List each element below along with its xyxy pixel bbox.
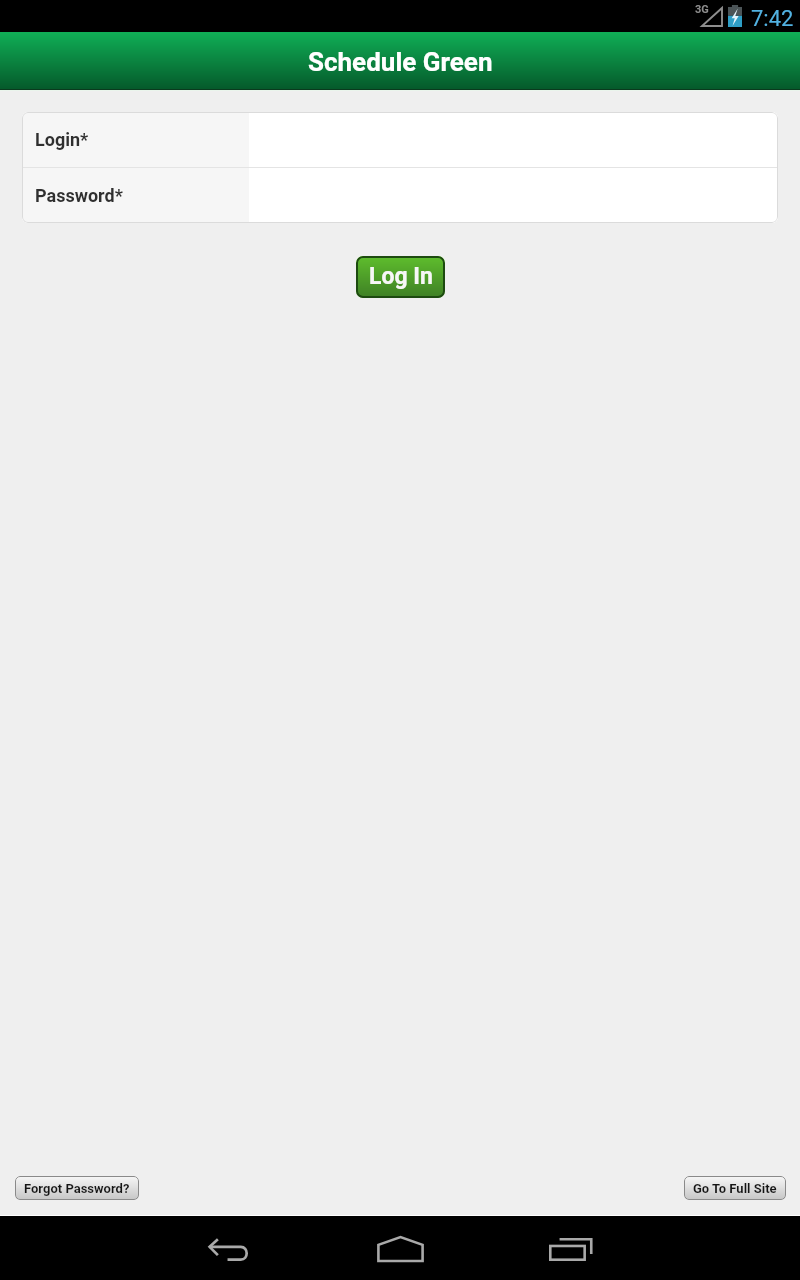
staticText: Log In bbox=[369, 263, 433, 290]
button[interactable]: Forgot Password? bbox=[15, 1176, 139, 1200]
staticText: 7:42 bbox=[751, 6, 794, 32]
button[interactable]: Go To Full Site bbox=[684, 1176, 786, 1200]
staticText: Go To Full Site bbox=[693, 1181, 777, 1196]
staticText: 3G bbox=[695, 3, 709, 16]
button[interactable]: Home bbox=[360, 1216, 440, 1280]
staticText: Login* bbox=[35, 129, 89, 150]
button[interactable]: Password* bbox=[22, 168, 778, 223]
button[interactable]: Recent apps bbox=[531, 1216, 611, 1280]
staticText: Forgot Password? bbox=[24, 1181, 130, 1196]
button[interactable]: Login* bbox=[22, 112, 778, 167]
staticText: Schedule Green bbox=[308, 47, 493, 77]
button[interactable]: Back bbox=[189, 1216, 269, 1280]
button[interactable]: Log In bbox=[356, 256, 445, 298]
staticText: Password* bbox=[35, 185, 123, 206]
